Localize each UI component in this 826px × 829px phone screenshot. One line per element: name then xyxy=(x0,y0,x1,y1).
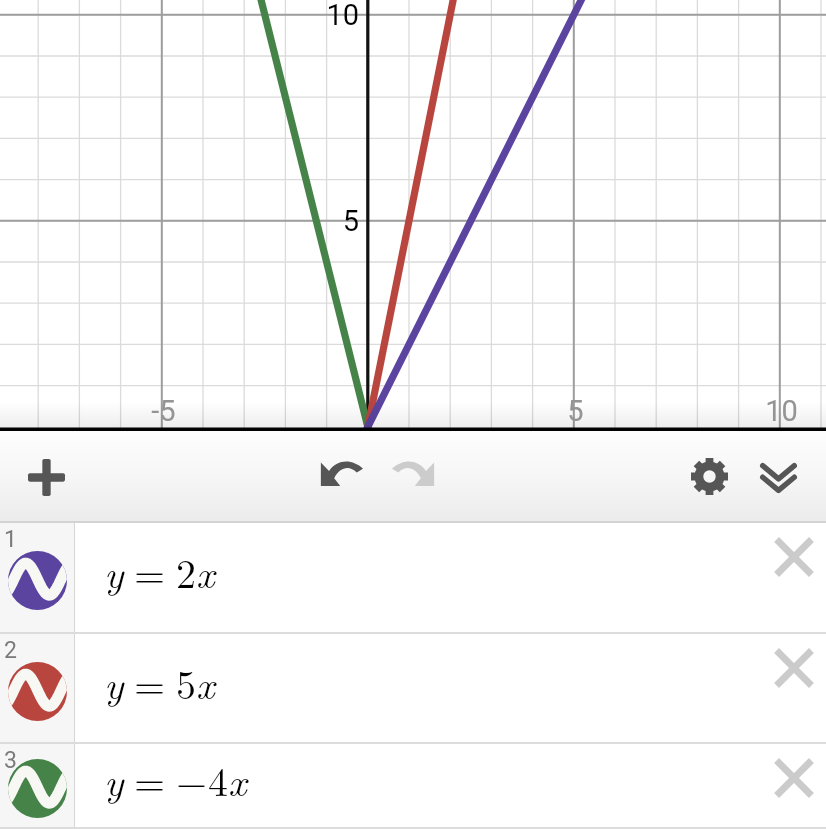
staticText: 2 xyxy=(4,637,17,664)
button[interactable]: Toggle graph 1 xyxy=(8,551,67,610)
button[interactable]: Collapse panel xyxy=(744,431,812,523)
staticText: x xyxy=(196,654,215,711)
button[interactable]: 1 xyxy=(0,523,826,634)
button[interactable]: Toggle graph 3 xyxy=(8,759,67,818)
staticText: 10 xyxy=(765,394,798,428)
button[interactable]: Redo xyxy=(379,431,447,523)
staticText: y xyxy=(104,654,124,711)
staticText: y xyxy=(104,751,124,808)
staticText: = xyxy=(134,543,166,600)
staticText: -5 xyxy=(151,394,176,428)
button[interactable]: Undo xyxy=(307,431,375,523)
button[interactable]: 2 xyxy=(0,634,826,744)
staticText: x xyxy=(196,543,215,600)
staticText: 2 xyxy=(176,543,196,600)
button[interactable]: Toggle graph 2 xyxy=(8,662,67,721)
staticText: 3 xyxy=(4,747,17,774)
staticText: 5 xyxy=(342,204,359,238)
button[interactable]: Add expression xyxy=(11,431,81,523)
staticText: = xyxy=(134,654,166,711)
staticText: 5 xyxy=(567,394,584,428)
staticText: y xyxy=(104,543,124,600)
staticText: 4 xyxy=(208,751,228,808)
button[interactable]: Delete expression 1 xyxy=(766,529,822,585)
button[interactable]: 3 xyxy=(0,744,826,829)
staticText: − xyxy=(176,751,208,808)
staticText: 10 xyxy=(326,0,359,32)
button[interactable]: Delete expression 3 xyxy=(766,750,822,806)
staticText: = xyxy=(134,751,166,808)
button[interactable]: Delete expression 2 xyxy=(766,640,822,696)
staticText: 5 xyxy=(176,654,196,711)
button[interactable]: Settings xyxy=(675,431,743,523)
staticText: 1 xyxy=(4,526,17,553)
staticText: x xyxy=(228,751,247,808)
